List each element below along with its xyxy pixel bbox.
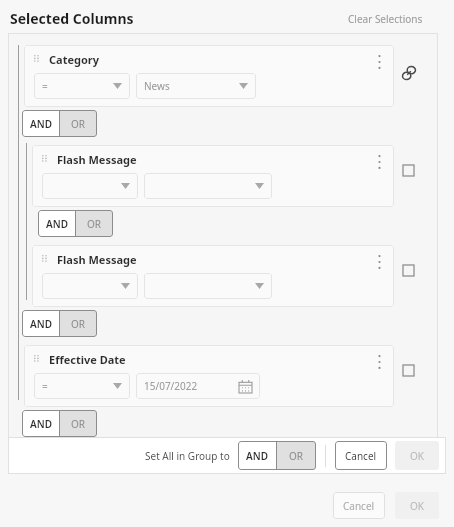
- button[interactable]: [42, 273, 138, 299]
- button[interactable]: Select row: [398, 360, 418, 380]
- button[interactable]: News: [136, 73, 256, 99]
- button[interactable]: Select row: [398, 260, 418, 280]
- staticText: OR: [71, 417, 86, 431]
- button[interactable]: [144, 273, 272, 299]
- button[interactable]: Clear Selections: [344, 10, 427, 28]
- button[interactable]: OR: [76, 210, 113, 237]
- button[interactable]: OK: [395, 441, 439, 470]
- staticText: Flash Message: [57, 252, 137, 267]
- button[interactable]: AND: [22, 110, 59, 137]
- staticText: Flash Message: [57, 152, 137, 167]
- button[interactable]: =: [34, 373, 130, 399]
- button[interactable]: AND: [22, 410, 59, 437]
- button[interactable]: Effective Date: [24, 345, 394, 407]
- staticText: AND: [246, 449, 268, 463]
- staticText: Set All in Group to: [145, 449, 230, 463]
- staticText: AND: [30, 317, 52, 331]
- button[interactable]: Select row: [398, 160, 418, 180]
- button[interactable]: Flash Message: [32, 145, 394, 207]
- button[interactable]: Cancel: [335, 441, 387, 470]
- button[interactable]: 15/07/2022: [136, 373, 260, 399]
- staticText: News: [144, 79, 170, 93]
- button[interactable]: OR: [60, 410, 97, 437]
- staticText: Clear Selections: [348, 12, 423, 26]
- staticText: Selected Columns: [10, 9, 134, 28]
- button[interactable]: Cancel: [333, 492, 385, 519]
- staticText: OR: [289, 449, 304, 463]
- button[interactable]: AND: [38, 210, 75, 237]
- staticText: Category: [49, 52, 100, 67]
- button[interactable]: Category: [24, 45, 394, 107]
- staticText: Cancel: [343, 499, 375, 513]
- staticText: OK: [410, 499, 424, 513]
- button[interactable]: More options: [370, 151, 388, 173]
- button[interactable]: AND: [238, 441, 276, 470]
- staticText: AND: [46, 217, 68, 231]
- staticText: AND: [30, 117, 52, 131]
- button[interactable]: More options: [370, 51, 388, 73]
- staticText: OR: [71, 117, 86, 131]
- staticText: Cancel: [345, 449, 377, 463]
- staticText: Effective Date: [49, 352, 126, 367]
- staticText: =: [42, 79, 48, 93]
- staticText: OR: [71, 317, 86, 331]
- button[interactable]: Link group: [398, 62, 420, 84]
- button[interactable]: OK: [395, 492, 439, 519]
- staticText: =: [42, 379, 48, 393]
- button[interactable]: AND: [22, 310, 59, 337]
- button[interactable]: Flash Message: [32, 245, 394, 307]
- staticText: AND: [30, 417, 52, 431]
- button[interactable]: OR: [60, 110, 97, 137]
- button[interactable]: [42, 173, 138, 199]
- button[interactable]: OR: [60, 310, 97, 337]
- staticText: OR: [87, 217, 102, 231]
- staticText: OK: [410, 449, 424, 463]
- staticText: 15/07/2022: [144, 379, 198, 393]
- button[interactable]: More options: [370, 251, 388, 273]
- button[interactable]: OR: [277, 441, 316, 470]
- button[interactable]: More options: [370, 351, 388, 373]
- button[interactable]: =: [34, 73, 130, 99]
- button[interactable]: [144, 173, 272, 199]
